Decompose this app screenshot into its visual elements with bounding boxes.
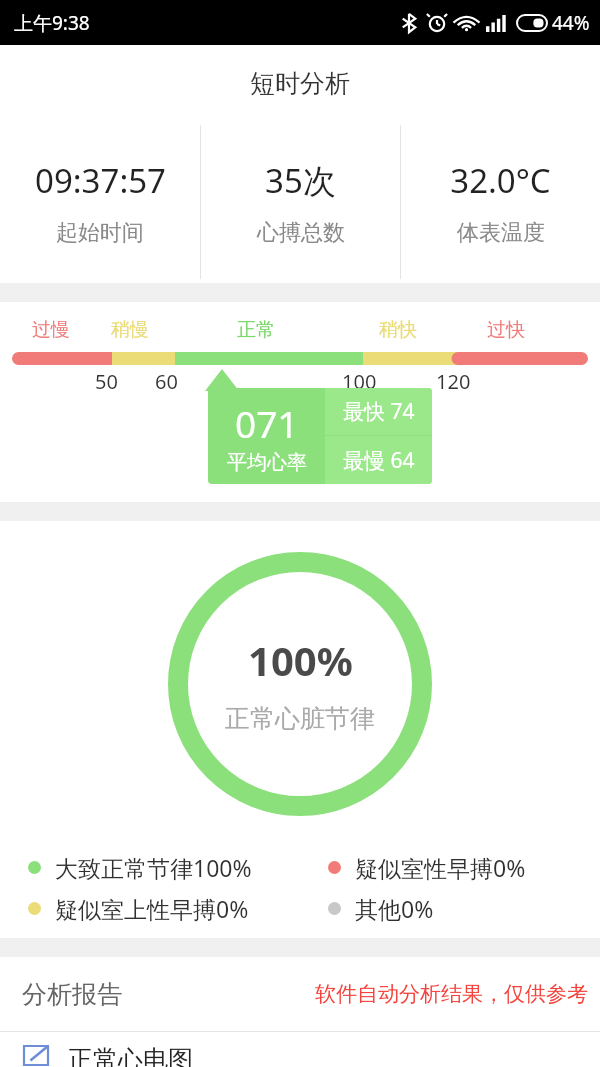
staticText: 体表温度 bbox=[457, 219, 545, 247]
staticText: 071 bbox=[235, 398, 299, 448]
staticText: 正常心电图 bbox=[68, 1044, 193, 1067]
button[interactable]: 大致正常节律100% bbox=[28, 852, 300, 883]
staticText: 最快 74 bbox=[343, 397, 415, 426]
staticText: 平均心率 bbox=[227, 450, 307, 475]
staticText: 上午9:38 bbox=[14, 10, 90, 36]
staticText: 稍快 bbox=[379, 318, 417, 342]
other: 正常心电图 bbox=[22, 1044, 50, 1067]
staticText: 100% bbox=[248, 633, 353, 687]
staticText: 其他0% bbox=[355, 893, 434, 924]
staticText: 疑似室上性早搏0% bbox=[55, 893, 249, 924]
staticText: 最慢 64 bbox=[343, 446, 415, 475]
staticText: 软件自动分析结果，仅供参考 bbox=[315, 981, 588, 1007]
staticText: 正常心脏节律 bbox=[225, 703, 375, 734]
staticText: 起始时间 bbox=[56, 219, 144, 247]
staticText: 疑似室性早搏0% bbox=[355, 852, 526, 883]
button[interactable]: 09:37:57 bbox=[0, 121, 200, 283]
staticText: 44% bbox=[552, 10, 590, 36]
staticText: 大致正常节律100% bbox=[55, 852, 252, 883]
button[interactable]: 其他0% bbox=[328, 893, 600, 924]
staticText: 分析报告 bbox=[22, 979, 122, 1010]
staticText: 稍慢 bbox=[111, 318, 149, 342]
staticText: 35次 bbox=[265, 158, 336, 203]
staticText: 32.0°C bbox=[450, 158, 551, 203]
staticText: 09:37:57 bbox=[35, 158, 166, 203]
staticText: 100 bbox=[342, 368, 377, 395]
button[interactable]: 35次 bbox=[201, 121, 400, 283]
button[interactable]: 071 bbox=[208, 388, 432, 484]
staticText: 50 bbox=[95, 368, 118, 395]
button[interactable]: 分析报告 bbox=[0, 957, 600, 1031]
staticText: 120 bbox=[436, 368, 471, 395]
staticText: 过快 bbox=[487, 318, 525, 342]
button[interactable]: 正常心电图 bbox=[22, 1044, 600, 1067]
staticText: 短时分析 bbox=[250, 68, 350, 99]
button[interactable]: 疑似室上性早搏0% bbox=[28, 893, 300, 924]
button[interactable]: 32.0°C bbox=[401, 121, 600, 283]
staticText: 心搏总数 bbox=[257, 219, 345, 247]
button[interactable]: 疑似室性早搏0% bbox=[328, 852, 600, 883]
staticText: 60 bbox=[155, 368, 178, 395]
staticText: 正常 bbox=[237, 318, 275, 342]
staticText: 过慢 bbox=[32, 318, 70, 342]
